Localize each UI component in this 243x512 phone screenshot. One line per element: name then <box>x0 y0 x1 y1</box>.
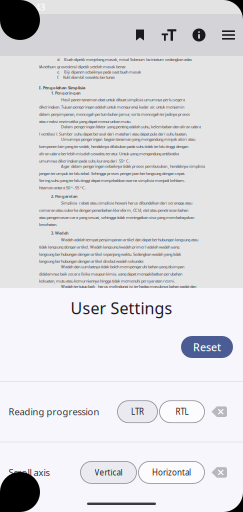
staticText: Wadah adalah tempat penyimpanan artikel … <box>61 237 198 242</box>
staticText: Scroll axis <box>8 466 49 479</box>
staticText: Simplisia rabati atau simplisia hewani h… <box>61 200 192 205</box>
staticText: Umumnya pengeringan bagian tanaman yang … <box>61 136 195 142</box>
staticText: e. Biji dipanen sebaiknya pada saat buah… <box>57 69 141 75</box>
staticText: langsung berhubungan dengan artikel sepa… <box>39 251 181 257</box>
button[interactable]: Vertical <box>80 461 136 483</box>
staticText: Agar dalam pengeringan sebaiknya tidak p… <box>61 163 205 169</box>
staticText: langsung berhubungan dengan artikel dise… <box>39 259 144 264</box>
staticText: Horizontal <box>152 467 191 478</box>
button[interactable]: Text size <box>154 14 184 56</box>
staticText: dalam penyimpanan, mencegah pertumbuhan … <box>39 111 190 117</box>
staticText: User Settings <box>70 297 172 319</box>
staticText: umumnya dikeringkan pada suhu kurang dar… <box>39 158 130 163</box>
staticText: komponen lain yang tersedak, hendaknya d… <box>39 144 188 149</box>
staticText: I. Pengolahan Simplisia <box>39 85 85 90</box>
staticText: atau reaksi enzimatika yang dapat menuru… <box>39 119 131 124</box>
staticText: didalamnya baik secara fisika maupun kim… <box>39 271 182 276</box>
staticText: cemaran atau sukerka dengan penanbahan k… <box>39 207 188 213</box>
staticText: 11:43 <box>22 1 45 13</box>
staticText: aliran udara berlebih misalah sewaktu te… <box>39 151 179 156</box>
button[interactable]: Horizontal <box>138 461 204 483</box>
staticText: Wadah tertutup baik harus melindungi isi… <box>61 284 196 289</box>
staticText: tidak langsung dengan artikel. Wadah lan… <box>39 244 179 249</box>
staticText: dikeringkan. Tujuan pengeringan adalah u… <box>39 104 184 110</box>
button[interactable]: LTR <box>117 401 157 423</box>
staticText: Reset <box>193 340 221 354</box>
button[interactable]: Document info <box>184 14 214 56</box>
staticText: 3. Wadah <box>51 230 69 235</box>
button[interactable]: Clear Scroll axis <box>211 467 227 478</box>
button[interactable]: Bookmark <box>126 14 154 56</box>
staticText: (Anethum graveolens) dipetik setelah mas… <box>39 64 126 69</box>
button[interactable]: RTL <box>159 401 204 423</box>
staticText: hitaman antara 50 °- 55 °C. <box>39 185 86 190</box>
staticText: kesehatan. <box>39 222 57 227</box>
staticText: Wadah dan sumbatnya tidak boleh mempenga… <box>61 264 184 269</box>
button[interactable]: Menu <box>214 14 243 56</box>
staticText: Dalam pengeringan faktor yang penting ad… <box>61 124 201 129</box>
staticText: f. Kulit diambil sewaktu bertunas <box>57 75 115 80</box>
button[interactable]: Clear Reading progression <box>211 406 227 417</box>
staticText: ( ventilasi ). Sumber suhu dapat berasal… <box>39 131 187 136</box>
staticText: Reading progression <box>8 405 99 418</box>
staticText: Sering suhu yang terlalu tinggi dapat me… <box>39 178 185 183</box>
staticText: 2. Pengaretan <box>51 193 78 199</box>
staticText: atau pengemasan cara yang sesuai, sehing… <box>39 215 194 220</box>
staticText: LTR <box>131 406 144 417</box>
staticText: jangan terumpuk terlalu tebal. Sehingga … <box>39 171 185 176</box>
button[interactable]: Reset <box>181 336 233 358</box>
staticText: d. Buah dipetik menjelang masak, misal S… <box>57 57 192 62</box>
staticText: Vertical <box>94 467 122 478</box>
staticText: kekuatan, mutu atau kemurniannya hingga … <box>39 278 175 284</box>
staticText: Hasil panen tanaman obat untuk dibuat si… <box>61 97 185 102</box>
staticText: 1. Pengeringan <box>51 90 81 95</box>
staticText: RTL <box>175 406 188 417</box>
